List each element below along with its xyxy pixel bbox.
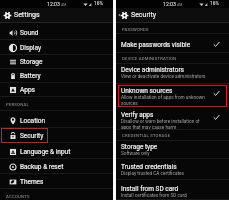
button[interactable]: Display — [0, 40, 113, 55]
button[interactable]: Security — [0, 128, 113, 143]
staticText: Device administrators — [121, 66, 204, 74]
staticText: CREDENTIAL STORAGE — [122, 133, 171, 138]
staticText: Disallow or warn before installation of … — [121, 119, 211, 130]
staticText: 16% — [94, 1, 103, 7]
button[interactable]: Device administrators — [116, 64, 229, 84]
button[interactable]: Battery — [0, 68, 113, 83]
staticText: Software only — [121, 151, 211, 157]
button[interactable]: Make passwords visible — [116, 34, 229, 53]
staticText: Verify apps — [121, 111, 204, 119]
staticText: AM — [61, 3, 67, 7]
button[interactable]: Trusted credentials — [116, 159, 229, 180]
button[interactable]: Language & input — [0, 144, 113, 159]
button[interactable]: Location — [0, 113, 113, 128]
button[interactable]: Backup & reset — [0, 159, 113, 174]
staticText: 16% — [210, 1, 219, 7]
staticText: Themes — [20, 178, 44, 186]
staticText: PASSWORDS — [122, 27, 149, 32]
staticText: Display trusted CA certificates — [121, 171, 211, 177]
staticText: Apps — [20, 86, 35, 94]
staticText: Location — [20, 117, 46, 125]
staticText: Allow installation of apps from unknown … — [121, 95, 211, 107]
button[interactable]: Unknown sources — [116, 84, 229, 107]
staticText: Security — [131, 11, 157, 19]
staticText: Language & input — [20, 148, 71, 156]
other: Back — [117, 13, 121, 17]
button[interactable]: Install from SD card — [116, 180, 229, 200]
staticText: Sound — [20, 29, 39, 37]
staticText: AM — [177, 3, 183, 7]
button[interactable]: Apps — [0, 82, 113, 97]
staticText: Storage — [20, 58, 43, 66]
staticText: 12:03 — [47, 1, 60, 7]
staticText: PERSONAL — [6, 102, 29, 107]
staticText: Backup & reset — [20, 163, 64, 171]
button[interactable]: Storage — [0, 54, 113, 69]
staticText: Unknown sources — [121, 87, 204, 95]
button[interactable]: Verify apps — [116, 107, 229, 130]
button[interactable]: Storage type — [116, 141, 229, 159]
button[interactable]: Themes — [0, 174, 113, 189]
staticText: Security — [20, 132, 44, 140]
staticText: Settings — [14, 11, 40, 19]
staticText: Battery — [20, 72, 41, 80]
staticText: Make passwords visible — [121, 41, 204, 49]
staticText: Storage type — [121, 143, 204, 151]
staticText: View or deactivate device administrators — [121, 74, 211, 80]
staticText: Install from SD card — [121, 185, 204, 193]
staticText: ACCOUNTS — [6, 194, 30, 199]
button[interactable]: Sound — [0, 25, 113, 40]
button[interactable]: Settings — [0, 8, 113, 22]
staticText: 12:03 — [163, 1, 176, 7]
staticText: DEVICE ADMINISTRATION — [122, 56, 177, 61]
staticText: Display — [20, 44, 41, 52]
staticText: Install certificates from SD card — [121, 193, 211, 199]
button[interactable]: Back — [116, 8, 229, 22]
staticText: Trusted credentials — [121, 163, 204, 171]
